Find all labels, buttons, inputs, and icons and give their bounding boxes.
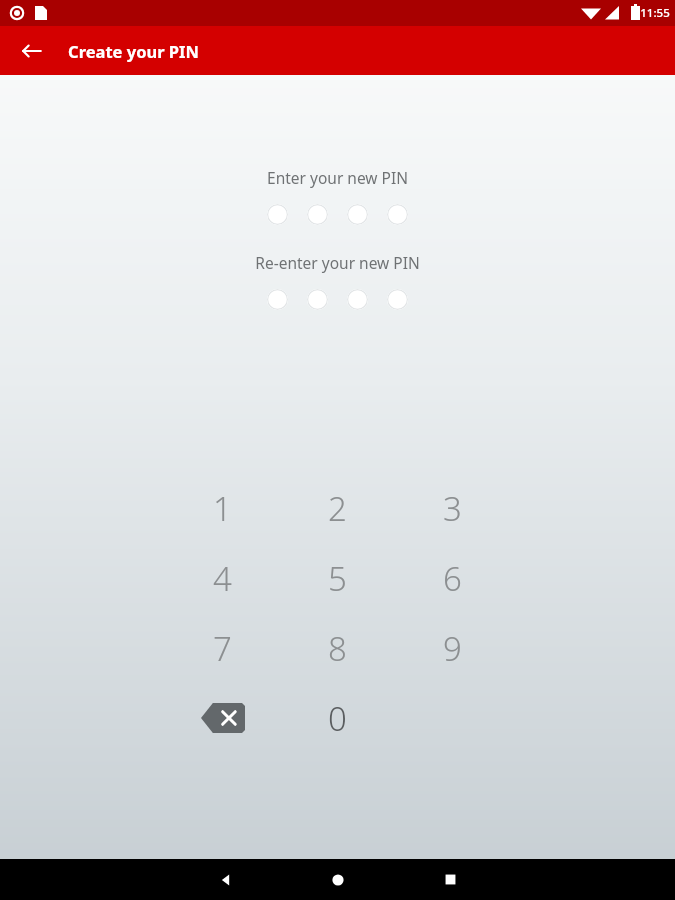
staticText: Enter your new PIN [267,167,408,188]
button[interactable]: 9 [395,613,510,683]
staticText: 8 [328,626,347,671]
staticText: 11:55 [640,5,670,21]
button[interactable]: 3 [395,473,510,543]
staticText: 3 [443,486,462,531]
button[interactable]: 4 [165,543,280,613]
button[interactable]: 0 [280,683,395,753]
button[interactable]: Backspace [165,683,280,753]
staticText: 7 [213,626,232,671]
staticText: 4 [213,556,232,601]
button[interactable]: Home [310,859,366,900]
button[interactable]: 2 [280,473,395,543]
button[interactable]: 1 [165,473,280,543]
staticText: Re-enter your new PIN [255,252,420,273]
button[interactable]: Recents [422,859,478,900]
staticText: 0 [328,696,347,741]
staticText: 6 [443,556,462,601]
button[interactable]: 5 [280,543,395,613]
button[interactable]: Back [198,859,254,900]
button[interactable]: 8 [280,613,395,683]
button[interactable]: Back [10,29,54,73]
staticText: 1 [213,486,232,531]
button[interactable]: 6 [395,543,510,613]
staticText: Create your PIN [68,40,199,62]
staticText: 2 [328,486,347,531]
button[interactable]: 7 [165,613,280,683]
staticText: 9 [443,626,462,671]
staticText: 5 [328,556,347,601]
